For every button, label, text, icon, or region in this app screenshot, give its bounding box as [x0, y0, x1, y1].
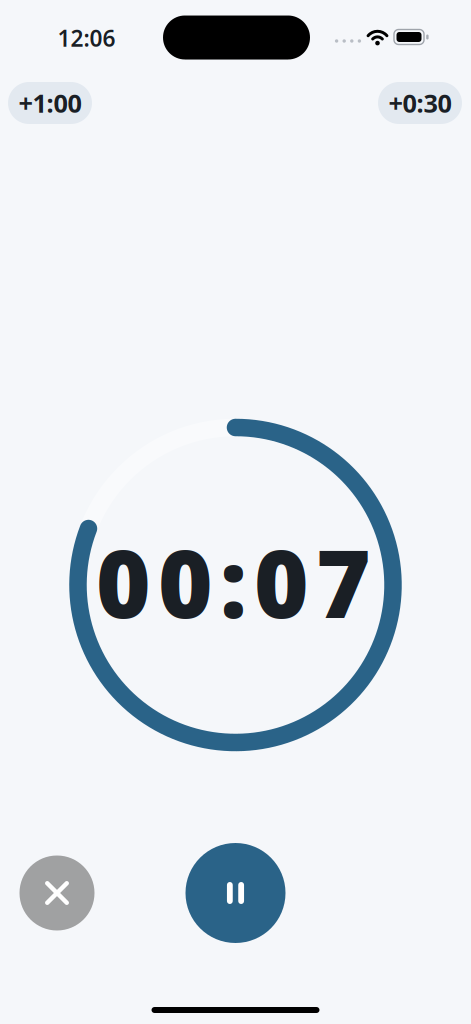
staticText: 12:06 [57, 23, 115, 53]
staticText: +0:30 [388, 86, 451, 120]
button[interactable]: +1:00 [8, 82, 92, 124]
staticText: 00:07 [96, 520, 371, 644]
button[interactable]: +0:30 [378, 82, 462, 124]
button[interactable] [185, 843, 285, 943]
button[interactable] [19, 855, 94, 930]
staticText: +1:00 [18, 86, 81, 120]
